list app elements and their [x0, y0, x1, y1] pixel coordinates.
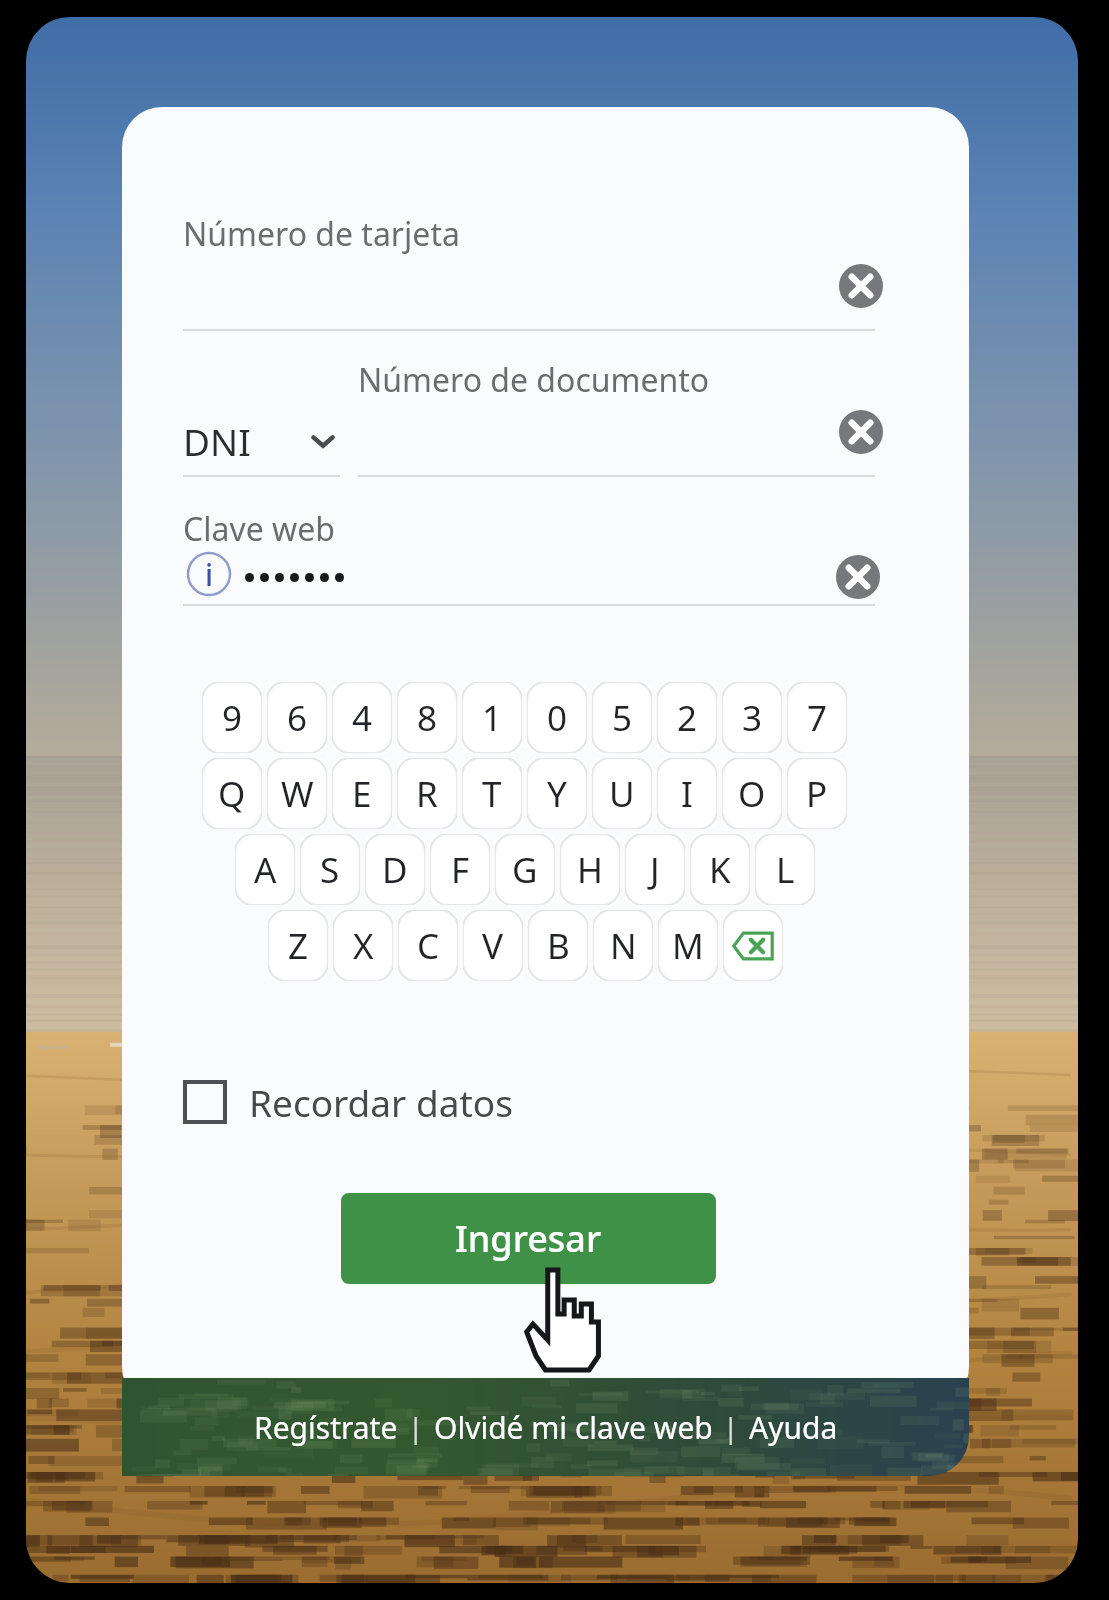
- button[interactable]: A: [235, 834, 295, 905]
- button[interactable]: Q: [202, 758, 262, 829]
- staticText: P: [806, 770, 828, 818]
- staticText: |: [408, 1408, 424, 1446]
- button[interactable]: D: [365, 834, 425, 905]
- button[interactable]: U: [592, 758, 652, 829]
- staticText: D: [382, 846, 408, 894]
- staticText: Q: [218, 770, 246, 818]
- staticText: J: [650, 846, 660, 894]
- staticText: M: [672, 922, 704, 970]
- button[interactable]: X: [333, 910, 393, 981]
- staticText: |: [723, 1408, 739, 1446]
- button[interactable]: Y: [527, 758, 587, 829]
- staticText: 3: [742, 694, 763, 742]
- button[interactable]: Olvidé mi clave web: [424, 1401, 723, 1454]
- staticText: Olvidé mi clave web: [434, 1407, 713, 1448]
- button[interactable]: B: [528, 910, 588, 981]
- staticText: Z: [288, 922, 309, 970]
- staticText: S: [320, 846, 340, 894]
- staticText: Ingresar: [455, 1214, 602, 1263]
- staticText: 5: [612, 694, 633, 742]
- staticText: N: [610, 922, 637, 970]
- staticText: E: [352, 770, 372, 818]
- button[interactable]: Ingresar: [341, 1193, 716, 1284]
- staticText: DNI: [183, 416, 251, 466]
- button[interactable]: P: [787, 758, 847, 829]
- staticText: T: [482, 770, 502, 818]
- button[interactable]: 9: [202, 682, 262, 753]
- button[interactable]: 5: [592, 682, 652, 753]
- button[interactable]: Información clave web: [186, 551, 232, 597]
- button[interactable]: 7: [787, 682, 847, 753]
- button[interactable]: Borrar: [839, 410, 883, 454]
- staticText: Clave web: [183, 507, 335, 551]
- button[interactable]: J: [625, 834, 685, 905]
- staticText: V: [482, 922, 504, 970]
- button[interactable]: C: [398, 910, 458, 981]
- button[interactable]: K: [690, 834, 750, 905]
- button[interactable]: M: [658, 910, 718, 981]
- staticText: 8: [417, 694, 438, 742]
- button[interactable]: V: [463, 910, 523, 981]
- staticText: 4: [352, 694, 373, 742]
- button[interactable]: E: [332, 758, 392, 829]
- staticText: K: [709, 846, 731, 894]
- staticText: F: [451, 846, 470, 894]
- staticText: Número de documento: [358, 358, 710, 402]
- staticText: Ayuda: [749, 1407, 838, 1448]
- staticText: A: [254, 846, 277, 894]
- button[interactable]: L: [755, 834, 815, 905]
- button[interactable]: 6: [267, 682, 327, 753]
- staticText: 7: [807, 694, 828, 742]
- button[interactable]: O: [722, 758, 782, 829]
- button[interactable]: N: [593, 910, 653, 981]
- button[interactable]: 4: [332, 682, 392, 753]
- button[interactable]: W: [267, 758, 327, 829]
- other: Tipo de documento: [308, 426, 338, 456]
- staticText: 6: [287, 694, 308, 742]
- button[interactable]: Borrar: [839, 264, 883, 308]
- staticText: 1: [482, 694, 503, 742]
- staticText: Regístrate: [254, 1407, 398, 1448]
- button[interactable]: F: [430, 834, 490, 905]
- button[interactable]: 8: [397, 682, 457, 753]
- button[interactable]: T: [462, 758, 522, 829]
- staticText: 2: [677, 694, 698, 742]
- button[interactable]: I: [657, 758, 717, 829]
- button[interactable]: Ayuda: [739, 1401, 848, 1454]
- button[interactable]: 0: [527, 682, 587, 753]
- staticText: W: [281, 770, 314, 818]
- button[interactable]: Borrar: [836, 555, 880, 599]
- button[interactable]: H: [560, 834, 620, 905]
- staticText: X: [353, 922, 374, 970]
- button[interactable]: 1: [462, 682, 522, 753]
- staticText: 0: [547, 694, 568, 742]
- button[interactable]: G: [495, 834, 555, 905]
- button[interactable]: 3: [722, 682, 782, 753]
- staticText: H: [577, 846, 603, 894]
- button[interactable]: Borrar caracter: [723, 910, 783, 981]
- staticText: U: [609, 770, 635, 818]
- staticText: 9: [222, 694, 243, 742]
- staticText: Recordar datos: [249, 1077, 513, 1127]
- button[interactable]: Recordar datos: [177, 1069, 519, 1135]
- staticText: O: [738, 770, 766, 818]
- button[interactable]: 2: [657, 682, 717, 753]
- staticText: C: [417, 922, 440, 970]
- button[interactable]: DNI: [183, 402, 338, 480]
- staticText: Número de tarjeta: [183, 212, 460, 256]
- staticText: L: [776, 846, 795, 894]
- button[interactable]: Regístrate: [244, 1401, 408, 1454]
- staticText: Y: [547, 770, 567, 818]
- staticText: G: [512, 846, 538, 894]
- staticText: I: [681, 770, 693, 818]
- button[interactable]: S: [300, 834, 360, 905]
- staticText: R: [416, 770, 438, 818]
- staticText: B: [547, 922, 570, 970]
- button[interactable]: Z: [268, 910, 328, 981]
- button[interactable]: R: [397, 758, 457, 829]
- staticText: i: [205, 554, 214, 595]
